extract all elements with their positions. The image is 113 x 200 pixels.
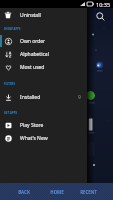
staticText: Uninstall: [20, 12, 41, 19]
staticText: GET APPS: [4, 111, 18, 115]
staticText: SHOW APPS: [4, 27, 21, 31]
staticText: 10:35: [96, 1, 111, 8]
staticText: What's New: [20, 135, 48, 142]
button[interactable]: Play Store: [0, 119, 87, 131]
staticText: 9: [78, 94, 81, 101]
button[interactable]: Installed: [0, 91, 87, 103]
staticText: Alphabetical: [20, 51, 49, 58]
staticText: BACK: [18, 189, 30, 195]
staticText: RECENT: [80, 189, 97, 195]
button[interactable]: Uninstall: [0, 8, 87, 22]
staticText: FILTERS: [4, 82, 15, 86]
staticText: HOME: [50, 189, 64, 195]
staticText: Installed: [20, 94, 41, 101]
staticText: Own order: [20, 38, 46, 45]
button[interactable]: HOME: [43, 183, 71, 200]
button[interactable]: Own order: [0, 35, 87, 47]
staticText: Play Store: [20, 122, 44, 129]
button[interactable]: Alphabetical: [0, 48, 87, 60]
button[interactable]: BACK: [10, 183, 38, 200]
button[interactable]: Most used: [0, 61, 87, 73]
button[interactable]: What's New: [0, 132, 87, 144]
button[interactable]: Search: [95, 11, 106, 22]
button[interactable]: RECENT: [74, 183, 102, 200]
staticText: Most used: [20, 64, 45, 71]
